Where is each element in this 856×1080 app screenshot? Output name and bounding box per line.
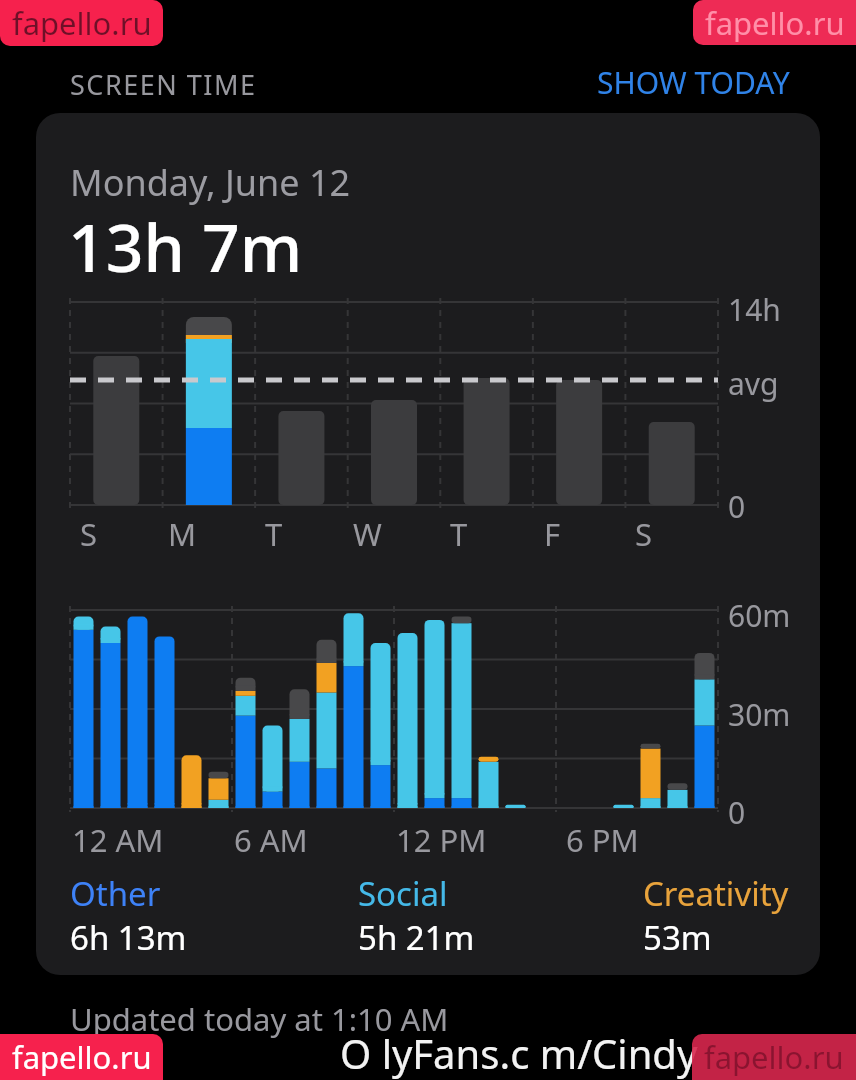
staticText: Monday, June 12 [70, 158, 351, 207]
staticText: Creativity [643, 871, 789, 916]
button[interactable]: SHOW TODAY [597, 62, 790, 103]
button[interactable]: fapello.ru [0, 1034, 163, 1080]
staticText: T [450, 513, 468, 555]
staticText: 13h 7m [68, 201, 303, 291]
button[interactable]: fapello.ru [0, 0, 163, 46]
staticText: fapello.ru [12, 2, 152, 44]
staticText: S [80, 513, 98, 555]
staticText: 60m [728, 595, 791, 636]
staticText: 12 PM [396, 819, 487, 861]
staticText: M [168, 513, 197, 555]
staticText: SHOW TODAY [597, 62, 790, 103]
staticText: 6 AM [234, 819, 308, 861]
button[interactable]: fapello.ru [692, 1034, 856, 1080]
staticText: 14h [728, 289, 781, 330]
staticText: SCREEN TIME [70, 66, 257, 103]
staticText: Social [358, 871, 448, 916]
staticText: fapello.ru [704, 1036, 844, 1078]
staticText: S [635, 513, 653, 555]
staticText: avg [728, 363, 779, 404]
staticText: W [353, 513, 382, 555]
staticText: 6 PM [566, 819, 639, 861]
staticText: O lyFans.c m/Cindy [340, 1026, 698, 1080]
staticText: 30m [728, 694, 791, 735]
staticText: fapello.ru [12, 1036, 152, 1078]
button[interactable]: fapello.ru [693, 0, 856, 45]
staticText: 6h 13m [70, 915, 187, 960]
staticText: 0 [728, 486, 746, 527]
staticText: F [544, 513, 561, 555]
staticText: T [265, 513, 283, 555]
staticText: 12 AM [72, 819, 164, 861]
staticText: Other [70, 871, 161, 916]
staticText: Updated today at 1:10 AM [70, 998, 449, 1040]
staticText: 5h 21m [358, 915, 475, 960]
button[interactable]: Monday, June 12 [36, 113, 820, 975]
staticText: fapello.ru [705, 2, 845, 44]
staticText: 53m [643, 915, 712, 960]
staticText: 0 [728, 792, 746, 833]
